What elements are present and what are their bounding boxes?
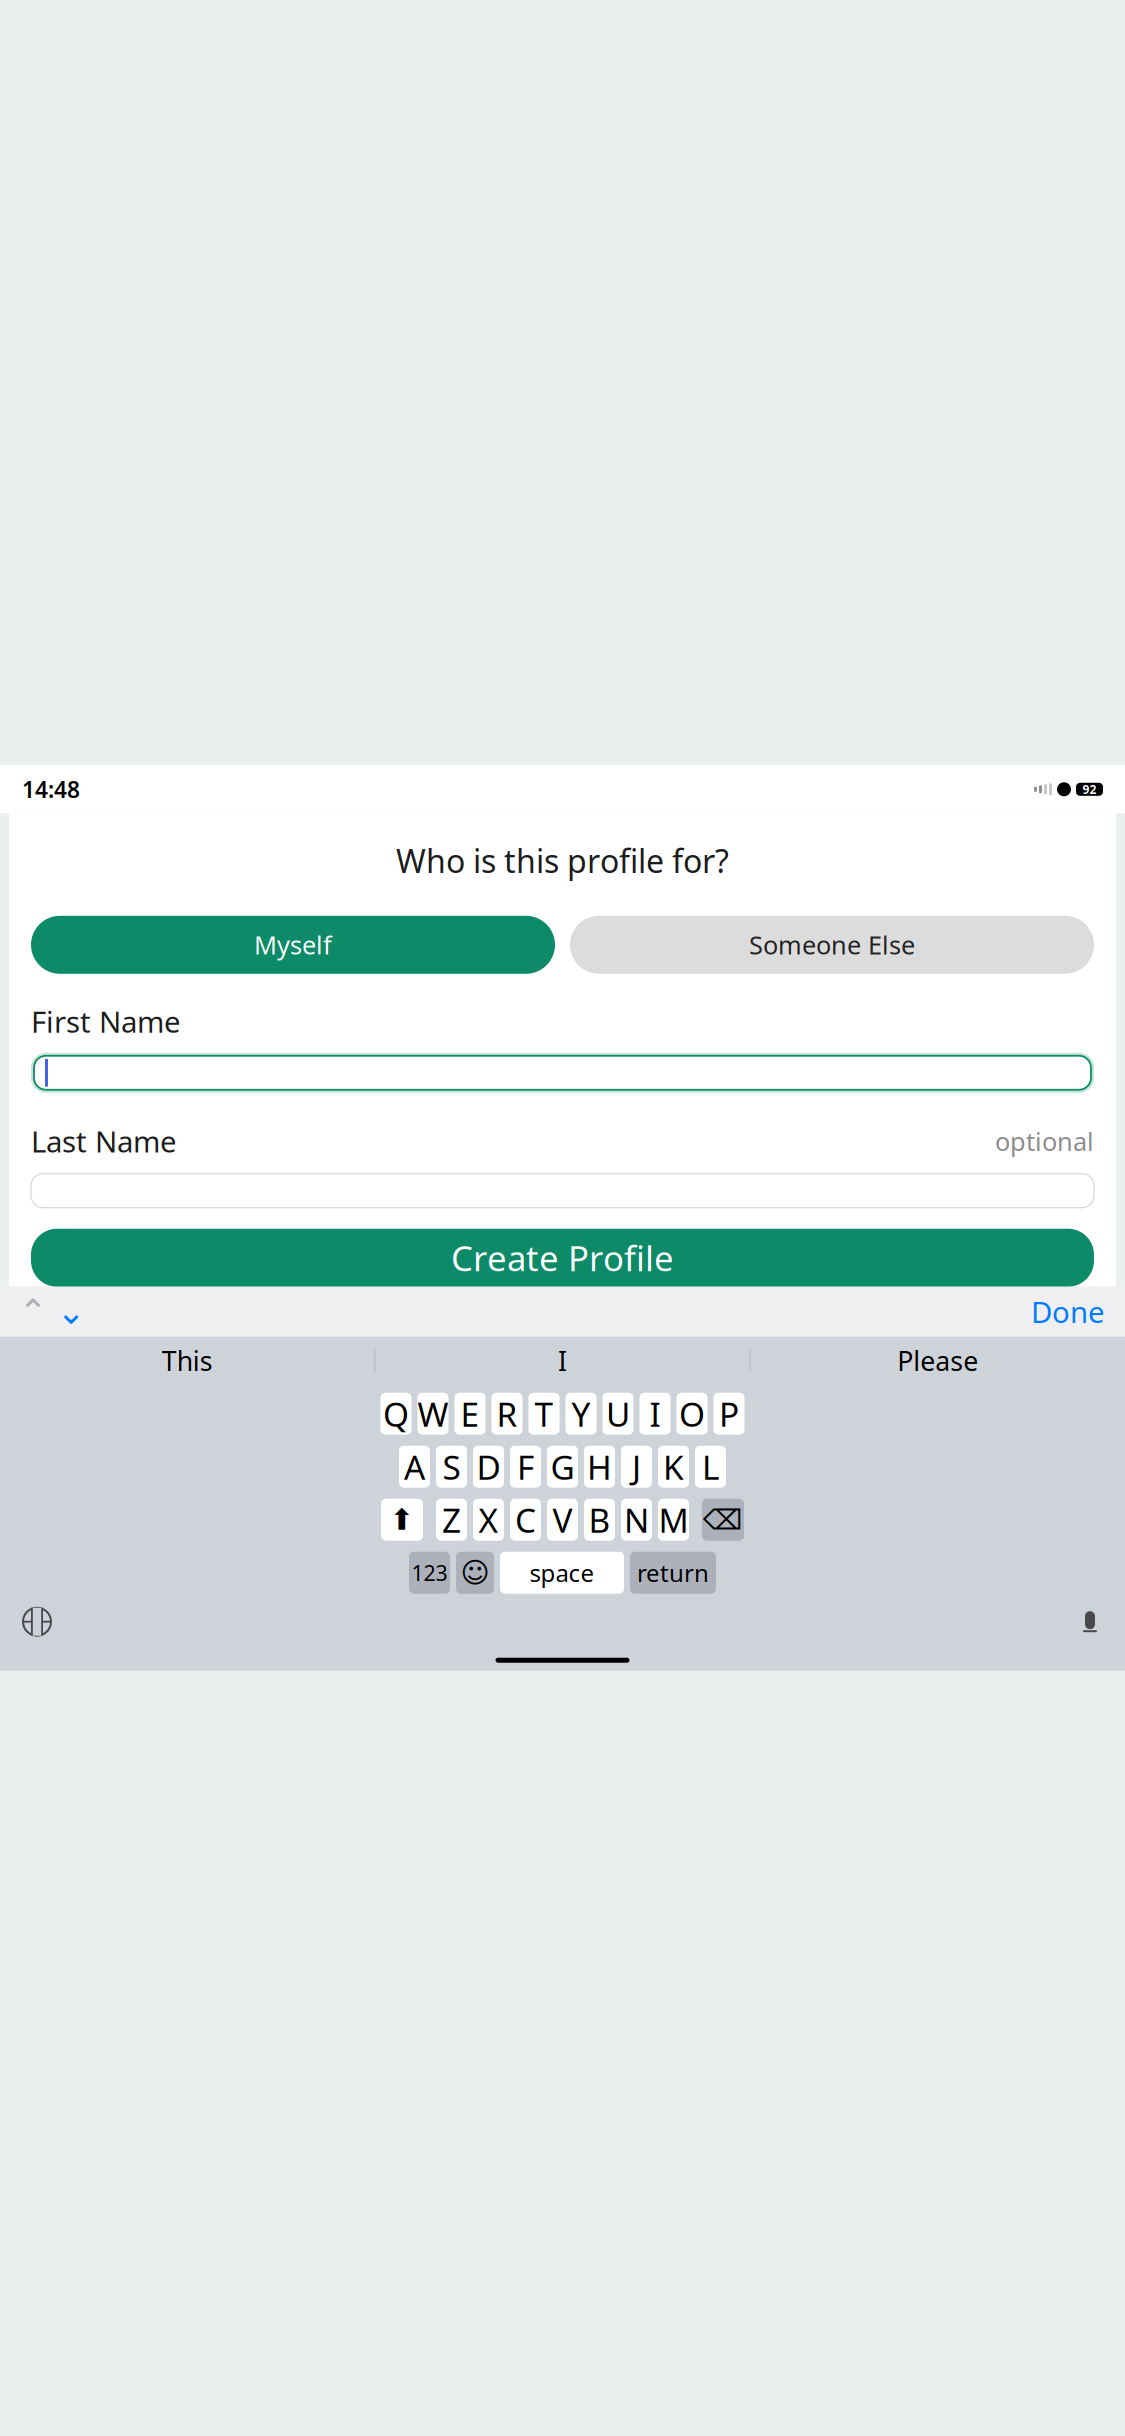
button[interactable]: R	[491, 1393, 522, 1435]
button[interactable]: X	[473, 1499, 504, 1541]
staticText: space	[529, 1557, 594, 1589]
staticText: ⌃	[18, 1292, 47, 1331]
button[interactable]: M	[658, 1499, 689, 1541]
button[interactable]: G	[547, 1446, 578, 1488]
staticText: N	[624, 1498, 649, 1542]
staticText: Last Name	[31, 1122, 177, 1161]
staticText: B	[588, 1498, 610, 1542]
button[interactable]: I	[375, 1337, 750, 1385]
button[interactable]: J	[621, 1446, 652, 1488]
staticText: This	[162, 1343, 213, 1378]
staticText: J	[632, 1445, 641, 1489]
button[interactable]: N	[621, 1499, 652, 1541]
button[interactable]: O	[676, 1393, 707, 1435]
button[interactable]: H	[584, 1446, 615, 1488]
button[interactable]: Please	[751, 1337, 1125, 1385]
staticText: Create Profile	[451, 1235, 674, 1281]
button[interactable]: return	[630, 1552, 716, 1594]
staticText: Someone Else	[749, 928, 915, 962]
staticText: return	[637, 1557, 709, 1589]
staticText: H	[587, 1445, 612, 1489]
staticText: W	[417, 1392, 448, 1436]
staticText: ⌫	[703, 1504, 743, 1536]
staticText: V	[552, 1498, 572, 1542]
button[interactable]: E	[454, 1393, 485, 1435]
staticText: I	[649, 1392, 660, 1436]
button[interactable]: Previous field	[14, 1292, 52, 1332]
staticText: ⌄	[56, 1292, 85, 1331]
staticText: D	[476, 1445, 500, 1489]
staticText: C	[515, 1498, 536, 1542]
button[interactable]: 123	[409, 1552, 450, 1594]
button[interactable]: P	[713, 1393, 744, 1435]
button[interactable]: T	[528, 1393, 559, 1435]
staticText: F	[517, 1445, 534, 1489]
button[interactable]: U	[602, 1393, 633, 1435]
staticText: R	[496, 1392, 517, 1436]
staticText: 92	[1082, 781, 1096, 797]
button[interactable]: C	[510, 1499, 541, 1541]
button[interactable]: Y	[565, 1393, 596, 1435]
button[interactable]: D	[473, 1446, 504, 1488]
button[interactable]: Next field	[52, 1292, 90, 1332]
staticText: T	[534, 1392, 553, 1436]
button[interactable]: Delete	[702, 1499, 744, 1541]
staticText: Myself	[254, 928, 332, 962]
button[interactable]: Q	[380, 1393, 411, 1435]
staticText: First Name	[31, 1002, 181, 1041]
staticText: O	[679, 1392, 705, 1436]
staticText: E	[460, 1392, 479, 1436]
staticText: Q	[383, 1392, 409, 1436]
staticText: Who is this profile for?	[396, 839, 729, 882]
button[interactable]: S	[436, 1446, 467, 1488]
staticText: 14:48	[22, 774, 80, 804]
button[interactable]: Myself	[31, 916, 555, 974]
staticText: G	[550, 1445, 574, 1489]
staticText: S	[442, 1445, 460, 1489]
staticText: A	[404, 1445, 425, 1489]
staticText: U	[606, 1392, 630, 1436]
staticText: Please	[897, 1343, 978, 1378]
staticText: L	[702, 1445, 719, 1489]
button[interactable]: Someone Else	[570, 916, 1094, 974]
button[interactable]: This	[0, 1337, 374, 1385]
button[interactable]: Emoji	[456, 1552, 494, 1594]
button[interactable]: K	[658, 1446, 689, 1488]
staticText: Done	[1031, 1292, 1105, 1331]
staticText: Y	[571, 1392, 590, 1436]
button[interactable]: Done	[1025, 1292, 1111, 1332]
button[interactable]: W	[417, 1393, 448, 1435]
button[interactable]: L	[695, 1446, 726, 1488]
button[interactable]: B	[584, 1499, 615, 1541]
button[interactable]: F	[510, 1446, 541, 1488]
button[interactable]: V	[547, 1499, 578, 1541]
button[interactable]: Shift	[381, 1499, 423, 1541]
button[interactable]: Create Profile	[31, 1229, 1094, 1287]
button[interactable]: Next keyboard	[20, 1605, 54, 1639]
staticText: ☺	[460, 1557, 489, 1589]
staticText: 123	[411, 1558, 447, 1587]
staticText: P	[719, 1392, 739, 1436]
staticText: I	[558, 1343, 567, 1378]
staticText: optional	[995, 1124, 1094, 1158]
button[interactable]: Z	[436, 1499, 467, 1541]
staticText: Z	[442, 1498, 461, 1542]
staticText: K	[663, 1445, 684, 1489]
button[interactable]: I	[639, 1393, 670, 1435]
staticText: M	[658, 1498, 688, 1542]
button[interactable]: Dictation	[1075, 1605, 1105, 1639]
button[interactable]: space	[500, 1552, 624, 1594]
staticText: X	[478, 1498, 498, 1542]
staticText: ⬆	[389, 1503, 414, 1536]
button[interactable]: A	[399, 1446, 430, 1488]
